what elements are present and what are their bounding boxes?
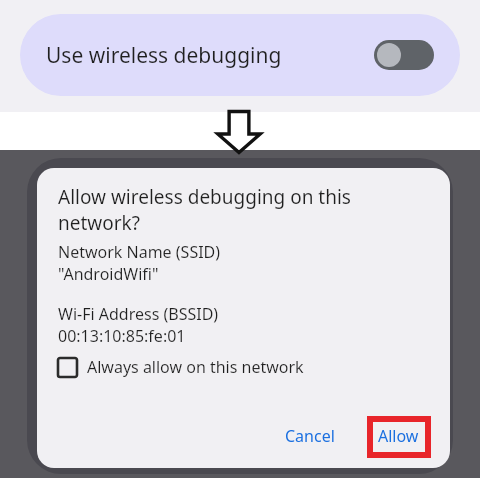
button[interactable]: Use wireless debugging toggle (374, 40, 434, 70)
staticText: Always allow on this network (87, 356, 304, 378)
staticText: "AndroidWifi" (58, 263, 159, 285)
button[interactable]: Always allow on this network (58, 356, 432, 378)
staticText: Allow (378, 425, 419, 447)
button[interactable]: Cancel (275, 419, 345, 453)
staticText: Wi-Fi Address (BSSID) (58, 303, 219, 325)
staticText: Cancel (285, 425, 335, 447)
button[interactable]: Allow (365, 418, 432, 454)
staticText: 00:13:10:85:fe:01 (58, 325, 186, 347)
staticText: Network Name (SSID) (58, 241, 221, 263)
button[interactable]: Use wireless debugging (20, 14, 460, 96)
staticText: Allow wireless debugging on this network… (58, 184, 351, 235)
staticText: Use wireless debugging (46, 41, 374, 70)
